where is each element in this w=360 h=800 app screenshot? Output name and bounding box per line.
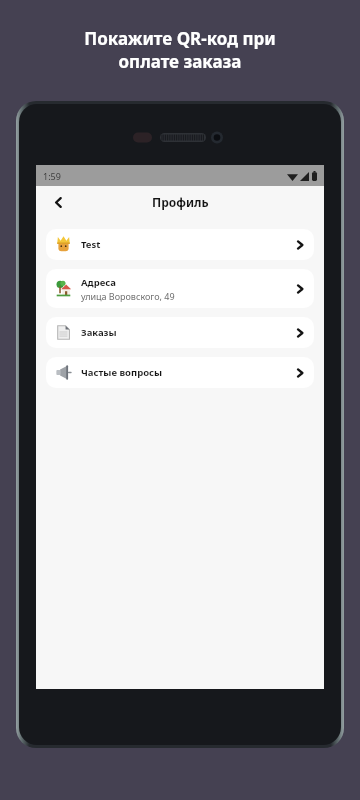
button[interactable]: Частые вопросы	[46, 357, 314, 388]
staticText: Test	[81, 238, 101, 251]
staticText: 1:59	[43, 170, 61, 182]
staticText: Профиль	[152, 194, 209, 210]
button[interactable]: Заказы	[46, 317, 314, 348]
button[interactable]: Test	[46, 229, 314, 260]
staticText: улица Воровского, 49	[81, 290, 175, 302]
button[interactable]: Back	[45, 189, 71, 215]
staticText: Покажите QR-код при оплате заказа	[0, 27, 360, 73]
staticText: Заказы	[81, 326, 117, 339]
staticText: Частые вопросы	[81, 366, 163, 379]
staticText: Адреса	[81, 276, 116, 289]
button[interactable]: Адреса	[46, 269, 314, 308]
